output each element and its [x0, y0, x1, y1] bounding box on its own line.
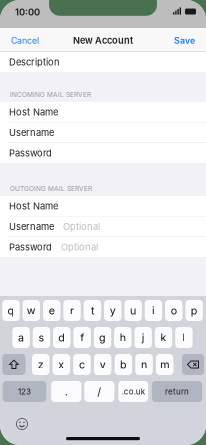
staticText: s	[38, 331, 44, 344]
button[interactable]: Password	[0, 143, 206, 163]
button[interactable]: .	[51, 381, 81, 402]
button[interactable]: d	[53, 327, 70, 348]
button[interactable]: Emoji keyboard	[16, 418, 28, 430]
staticText: Username	[9, 127, 54, 138]
staticText: d	[58, 331, 65, 344]
button[interactable]: Password	[0, 237, 206, 257]
staticText: Optional	[63, 221, 100, 232]
staticText: Description	[9, 56, 60, 68]
button[interactable]: j	[134, 327, 152, 348]
staticText: j	[142, 331, 145, 344]
staticText: Cancel	[11, 35, 39, 46]
button[interactable]: Description	[0, 52, 206, 72]
button[interactable]: Delete	[182, 354, 204, 375]
button[interactable]: k	[155, 327, 172, 348]
button[interactable]: f	[73, 327, 91, 348]
button[interactable]: Save	[152, 34, 206, 47]
staticText: h	[120, 331, 126, 344]
button[interactable]: t	[84, 300, 101, 321]
button[interactable]: y	[104, 300, 121, 321]
button[interactable]: Shift	[2, 354, 26, 375]
staticText: m	[160, 358, 169, 371]
staticText: o	[171, 304, 177, 317]
staticText: r	[70, 304, 74, 317]
staticText: f	[80, 331, 84, 344]
button[interactable]: i	[145, 300, 162, 321]
staticText: OUTGOING MAIL SERVER	[10, 184, 92, 192]
staticText: c	[79, 358, 85, 371]
staticText: l	[182, 331, 185, 344]
button[interactable]: r	[63, 300, 81, 321]
button[interactable]: v	[94, 354, 111, 375]
button[interactable]: c	[73, 354, 91, 375]
button[interactable]: h	[114, 327, 132, 348]
staticText: t	[91, 304, 94, 317]
staticText: Password	[9, 241, 52, 253]
button[interactable]: Username	[0, 216, 206, 236]
staticText: return	[165, 387, 189, 396]
staticText: x	[58, 358, 64, 371]
button[interactable]: return	[152, 381, 202, 402]
staticText: Save	[174, 35, 195, 46]
staticText: New Account	[73, 35, 133, 46]
staticText: n	[141, 358, 147, 371]
button[interactable]: Host Name	[0, 102, 206, 122]
button[interactable]: x	[53, 354, 70, 375]
staticText: k	[161, 331, 167, 344]
staticText: Optional	[61, 241, 98, 253]
staticText: Username	[9, 221, 54, 232]
staticText: Host Name	[9, 106, 58, 118]
staticText: p	[191, 304, 198, 317]
staticText: .co.uk	[122, 387, 145, 396]
staticText: u	[130, 304, 136, 317]
staticText: INCOMING MAIL SERVER	[10, 90, 91, 98]
button[interactable]: a	[12, 327, 30, 348]
button[interactable]: /	[84, 381, 114, 402]
button[interactable]: Cancel	[0, 34, 54, 47]
button[interactable]: q	[2, 300, 20, 321]
button[interactable]: Host Name	[0, 196, 206, 216]
button[interactable]: u	[124, 300, 142, 321]
staticText: w	[27, 304, 36, 317]
button[interactable]: o	[165, 300, 182, 321]
button[interactable]: e	[43, 300, 60, 321]
staticText: i	[152, 304, 155, 317]
button[interactable]: 123	[3, 381, 46, 402]
button[interactable]: n	[135, 354, 153, 375]
button[interactable]: .co.uk	[118, 381, 148, 402]
button[interactable]: s	[33, 327, 50, 348]
staticText: Password	[9, 147, 52, 159]
staticText: y	[110, 304, 116, 317]
staticText: b	[120, 358, 127, 371]
button[interactable]: z	[32, 354, 49, 375]
staticText: 123	[18, 387, 31, 396]
staticText: e	[49, 304, 55, 317]
button[interactable]: w	[23, 300, 40, 321]
button[interactable]: Username	[0, 122, 206, 142]
staticText: Host Name	[9, 200, 58, 212]
staticText: v	[100, 358, 106, 371]
staticText: z	[38, 358, 44, 371]
button[interactable]: p	[185, 300, 203, 321]
button[interactable]: g	[94, 327, 111, 348]
button[interactable]: l	[175, 327, 193, 348]
button[interactable]: m	[156, 354, 173, 375]
staticText: .	[65, 385, 68, 398]
staticText: 10:00	[15, 6, 40, 18]
staticText: a	[18, 331, 24, 344]
button[interactable]: b	[115, 354, 132, 375]
staticText: q	[7, 304, 14, 317]
staticText: /	[97, 385, 101, 398]
staticText: g	[99, 331, 106, 344]
